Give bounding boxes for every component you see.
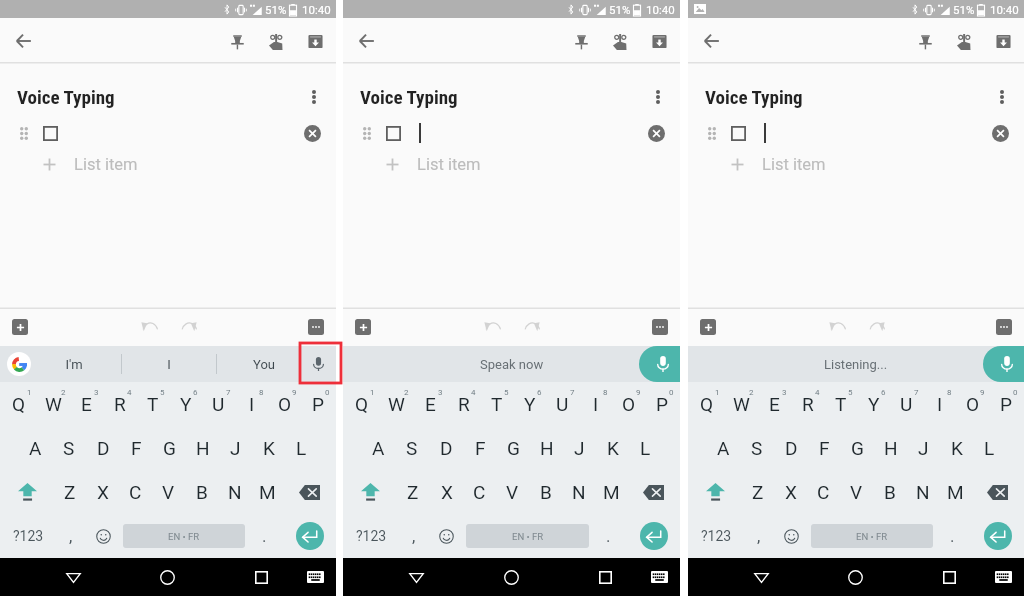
button[interactable]: List item [385,151,680,177]
button[interactable]: S [395,426,429,470]
button[interactable]: Archive [984,22,1023,61]
button[interactable]: P [989,382,1022,426]
button[interactable]: R [447,382,480,426]
button[interactable]: Redo [860,311,892,343]
button[interactable]: Z [396,470,430,514]
button[interactable]: , [54,514,87,558]
button[interactable]: G [497,426,530,470]
button[interactable]: Home [464,558,558,596]
button[interactable]: Reminder [257,22,296,61]
button[interactable]: W [724,382,758,426]
button[interactable]: Backspace [284,470,334,514]
button[interactable]: Home [808,558,902,596]
button[interactable]: C [119,470,152,514]
button[interactable]: J [219,426,252,470]
button[interactable]: Google [7,352,31,376]
button[interactable]: I'm [27,346,121,382]
button[interactable]: H [530,426,563,470]
button[interactable]: Add [700,319,716,335]
button[interactable]: Add [12,319,28,335]
button[interactable]: T [824,382,857,426]
button[interactable]: . [248,514,281,558]
button[interactable]: D [86,426,120,470]
button[interactable]: Reminder [601,22,640,61]
button[interactable]: E [758,382,791,426]
button[interactable]: Shift [2,470,53,514]
button[interactable]: S [52,426,86,470]
button[interactable]: Q [345,382,379,426]
button[interactable]: Undo [821,311,853,343]
button[interactable]: Delete item [988,121,1012,145]
button[interactable]: M [251,470,284,514]
button[interactable]: M [595,470,628,514]
button[interactable]: K [596,426,629,470]
button[interactable]: More [308,319,324,335]
button[interactable]: ?123 [690,514,742,558]
button[interactable]: P [301,382,334,426]
button[interactable]: F [463,426,497,470]
button[interactable]: You [217,346,311,382]
button[interactable]: C [463,470,496,514]
button[interactable]: ?123 [2,514,54,558]
button[interactable]: K [940,426,973,470]
button[interactable]: T [480,382,513,426]
button[interactable]: Archive [640,22,679,61]
button[interactable]: L [285,426,318,470]
button[interactable]: Y [169,382,202,426]
button[interactable]: More [652,319,668,335]
button[interactable]: N [562,470,595,514]
button[interactable]: Keyboard [982,558,1024,596]
button[interactable]: Keyboard [294,558,336,596]
button[interactable]: . [936,514,969,558]
button[interactable]: Recents [558,558,652,596]
button[interactable]: A [361,426,395,470]
button[interactable]: R [103,382,136,426]
button[interactable]: V [152,470,185,514]
button[interactable]: . [592,514,625,558]
button[interactable]: M [939,470,972,514]
button[interactable]: U [546,382,579,426]
button[interactable]: D [774,426,808,470]
button[interactable]: R [791,382,824,426]
button[interactable]: E [413,382,447,426]
button[interactable]: D [429,426,463,470]
button[interactable]: Delete item [644,121,668,145]
button[interactable]: T [136,382,169,426]
button[interactable]: Add [355,319,371,335]
button[interactable]: L [973,426,1006,470]
button[interactable]: I [122,346,216,382]
button[interactable]: Voice input [983,346,1024,382]
button[interactable]: Back [26,558,120,596]
button[interactable]: Voice input [639,346,680,382]
button[interactable]: More options [644,83,672,111]
button[interactable]: N [218,470,251,514]
button[interactable]: More options [988,83,1016,111]
button[interactable]: W [36,382,70,426]
button[interactable]: Back [714,558,808,596]
button[interactable]: V [840,470,873,514]
button[interactable]: Pin [218,22,257,61]
button[interactable]: Backspace [628,470,678,514]
button[interactable]: G [841,426,874,470]
button[interactable]: Back [693,23,729,59]
button[interactable]: P [645,382,678,426]
button[interactable]: Back [5,23,41,59]
button[interactable]: N [906,470,939,514]
button[interactable]: Recents [214,558,308,596]
button[interactable]: Enter [640,522,668,550]
button[interactable]: A [706,426,740,470]
button[interactable]: C [807,470,840,514]
button[interactable]: O [268,382,301,426]
button[interactable]: Back [369,558,464,596]
button[interactable]: Emoji [775,514,808,558]
button[interactable]: Y [513,382,546,426]
button[interactable]: EN • FR [811,524,933,548]
button[interactable]: Pin [906,22,945,61]
button[interactable]: Q [2,382,36,426]
button[interactable]: I [923,382,956,426]
button[interactable]: Z [741,470,774,514]
button[interactable]: X [86,470,119,514]
button[interactable]: J [563,426,596,470]
button[interactable]: O [956,382,989,426]
button[interactable]: K [252,426,285,470]
